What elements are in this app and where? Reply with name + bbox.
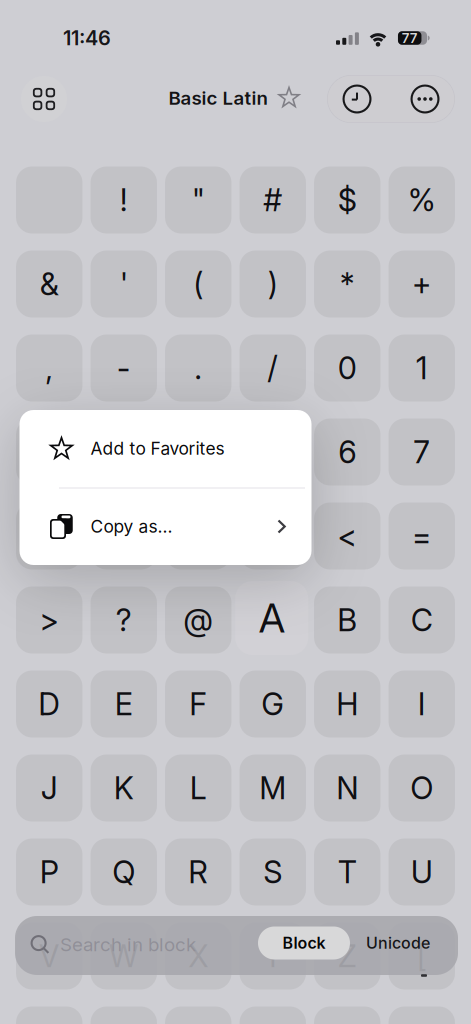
- button[interactable]: Q: [91, 838, 157, 905]
- button[interactable]: Add to Favorites: [278, 87, 300, 109]
- staticText: G: [261, 686, 284, 722]
- button[interactable]: ;: [240, 502, 306, 569]
- button[interactable]: Recents: [341, 83, 373, 115]
- staticText: Basic Latin: [168, 87, 267, 109]
- button[interactable]: M: [240, 754, 306, 821]
- button[interactable]: 3: [91, 418, 157, 485]
- staticText: $: [338, 182, 357, 218]
- button[interactable]: N: [314, 754, 380, 821]
- button[interactable]: 4: [165, 418, 231, 485]
- staticText: #: [263, 182, 282, 218]
- button[interactable]: O: [389, 754, 455, 821]
- button[interactable]: U: [389, 838, 455, 905]
- button[interactable]: ]: [91, 1006, 157, 1024]
- button[interactable]: ": [165, 166, 231, 233]
- button[interactable]: 0: [314, 334, 380, 401]
- button[interactable]: 9: [91, 502, 157, 569]
- button[interactable]: ^: [165, 1006, 231, 1024]
- staticText: Q: [112, 854, 135, 890]
- button[interactable]: =: [389, 502, 455, 569]
- button[interactable]: R: [165, 838, 231, 905]
- button[interactable]: \: [16, 1006, 82, 1024]
- button[interactable]: More: [409, 83, 441, 115]
- button[interactable]: Z: [314, 922, 380, 989]
- button[interactable]: 1: [389, 334, 455, 401]
- staticText: Unicode: [366, 934, 430, 952]
- button[interactable]: D: [16, 670, 82, 737]
- staticText: N: [336, 770, 358, 806]
- staticText: 3: [114, 434, 133, 470]
- button[interactable]: I: [389, 670, 455, 737]
- button[interactable]: `: [314, 1006, 380, 1024]
- staticText: W: [109, 938, 139, 974]
- button[interactable]: K: [91, 754, 157, 821]
- button[interactable]: B: [314, 586, 380, 653]
- button[interactable]: Unicode: [358, 926, 438, 959]
- button[interactable]: .: [165, 334, 231, 401]
- button[interactable]: A: [235, 581, 308, 655]
- staticText: +: [412, 266, 432, 302]
- button[interactable]: 8: [16, 502, 82, 569]
- button[interactable]: C: [389, 586, 455, 653]
- button[interactable]: H: [314, 670, 380, 737]
- staticText: 9: [115, 518, 133, 554]
- button[interactable]: ?: [91, 586, 157, 653]
- button[interactable]: Copy as...: [19, 488, 311, 565]
- button[interactable]: 7: [389, 418, 455, 485]
- button[interactable]: @: [165, 586, 231, 653]
- button[interactable]: #: [240, 166, 306, 233]
- button[interactable]: L: [165, 754, 231, 821]
- button[interactable]: a: [389, 1006, 455, 1024]
- button[interactable]: W: [91, 922, 157, 989]
- button[interactable]: ': [91, 250, 157, 317]
- button[interactable]: ): [240, 250, 306, 317]
- button[interactable]: S: [240, 838, 306, 905]
- button[interactable]: <: [314, 502, 380, 569]
- staticText: @: [183, 602, 213, 638]
- button[interactable]: +: [389, 250, 455, 317]
- button[interactable]: 6: [314, 418, 380, 485]
- button[interactable]: Block: [258, 926, 350, 959]
- button[interactable]: F: [165, 670, 231, 737]
- button[interactable]: $: [314, 166, 380, 233]
- button[interactable]: &: [16, 250, 82, 317]
- staticText: M: [259, 770, 286, 806]
- staticText: 0: [338, 350, 357, 386]
- button[interactable]: -: [91, 334, 157, 401]
- staticText: .: [194, 350, 202, 386]
- button[interactable]: Search in block: [15, 915, 235, 974]
- button[interactable]: %: [389, 166, 455, 233]
- button[interactable]: P: [16, 838, 82, 905]
- button[interactable]: E: [91, 670, 157, 737]
- button[interactable]: J: [16, 754, 82, 821]
- button[interactable]: !: [91, 166, 157, 233]
- staticText: Add to Favorites: [90, 438, 224, 459]
- button[interactable]: [: [389, 922, 455, 989]
- button[interactable]: (: [165, 250, 231, 317]
- button[interactable]: *: [314, 250, 380, 317]
- button[interactable]: Add to Favorites: [19, 410, 311, 487]
- button[interactable]: 2: [16, 418, 82, 485]
- staticText: L: [190, 770, 207, 806]
- staticText: E: [115, 686, 133, 722]
- button[interactable]: /: [240, 334, 306, 401]
- button[interactable]: :: [165, 502, 231, 569]
- button[interactable]: V: [16, 922, 82, 989]
- button[interactable]: _: [240, 1006, 306, 1024]
- button[interactable]: >: [16, 586, 82, 653]
- button[interactable]: Y: [240, 922, 306, 989]
- staticText: 8: [40, 518, 58, 554]
- button[interactable]: Blocks: [21, 76, 67, 122]
- button[interactable]: G: [240, 670, 306, 737]
- button[interactable]: ,: [16, 334, 82, 401]
- button[interactable]: T: [314, 838, 380, 905]
- staticText: S: [263, 854, 282, 890]
- staticText: U: [411, 854, 433, 890]
- button[interactable]: X: [165, 922, 231, 989]
